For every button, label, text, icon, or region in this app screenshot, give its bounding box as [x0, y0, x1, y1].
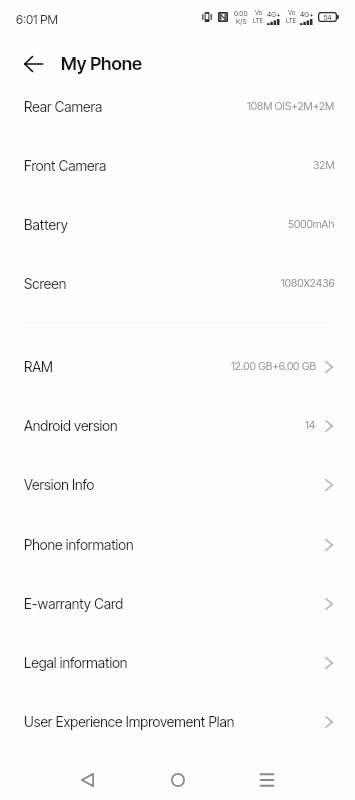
staticText: Front Camera — [24, 157, 107, 174]
staticText: 12.00 GB+6.00 GB — [231, 360, 316, 373]
button[interactable]: RAM — [0, 337, 355, 396]
staticText: 6:01 PM — [16, 12, 58, 27]
staticText: 32M — [313, 159, 335, 172]
button[interactable]: E-warranty Card — [0, 574, 355, 633]
button[interactable]: Legal information — [0, 633, 355, 692]
staticText: 4G+ — [300, 10, 314, 18]
button[interactable]: User Experience Improvement Plan — [0, 692, 355, 751]
button[interactable]: Home — [154, 756, 201, 800]
staticText: Version Info — [24, 476, 95, 493]
staticText: Vo — [288, 9, 296, 17]
button[interactable]: Battery — [0, 195, 355, 254]
staticText: Rear Camera — [24, 98, 103, 115]
button[interactable]: Front Camera — [0, 136, 355, 195]
button[interactable]: Back — [64, 756, 111, 800]
staticText: E-warranty Card — [24, 595, 124, 612]
staticText: 5000mAh — [288, 218, 335, 231]
button[interactable]: Back — [13, 43, 54, 84]
staticText: My Phone — [61, 53, 143, 75]
button[interactable]: Version Info — [0, 455, 355, 514]
staticText: 108M OIS+2M+2M — [247, 100, 335, 113]
staticText: K/S — [236, 17, 247, 25]
staticText: Android version — [24, 417, 118, 434]
staticText: Phone information — [24, 536, 134, 553]
staticText: Screen — [24, 275, 67, 292]
staticText: 1080X2436 — [281, 277, 335, 290]
staticText: User Experience Improvement Plan — [24, 713, 235, 730]
button[interactable]: Screen — [0, 254, 355, 313]
staticText: Legal information — [24, 654, 128, 671]
staticText: 14 — [305, 419, 316, 432]
staticText: 54 — [323, 13, 332, 21]
staticText: LTE — [286, 17, 297, 25]
button[interactable]: Android version — [0, 396, 355, 455]
staticText: Vo — [255, 9, 263, 17]
button[interactable]: Rear Camera — [0, 77, 355, 136]
staticText: Battery — [24, 216, 68, 233]
staticText: RAM — [24, 358, 53, 375]
staticText: LTE — [253, 17, 264, 25]
staticText: 4G+ — [267, 10, 281, 18]
staticText: 0.00 — [234, 9, 248, 17]
button[interactable]: Phone information — [0, 515, 355, 574]
button[interactable]: Recent apps — [243, 756, 290, 800]
